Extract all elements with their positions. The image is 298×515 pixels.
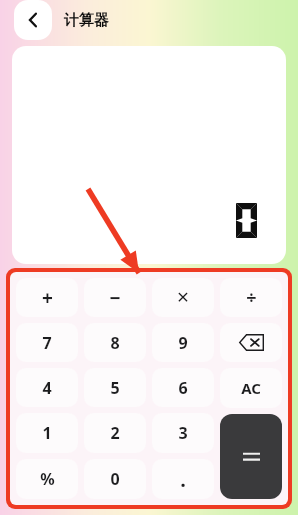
button[interactable]: 1 [16,413,78,453]
staticText: ÷ [246,285,257,310]
staticText: 2 [110,422,120,444]
staticText: 6 [178,377,188,399]
staticText: + [42,285,53,311]
staticText: 9 [178,332,188,354]
staticText: % [40,468,55,490]
button[interactable]: 4 [16,368,78,407]
button[interactable]: . [152,459,214,499]
button[interactable]: % [16,459,78,499]
button[interactable]: − [84,278,146,317]
staticText: 1 [42,422,52,444]
button[interactable]: + [16,278,78,317]
staticText: 3 [178,422,188,444]
staticText: 计算器 [64,11,109,30]
button[interactable]: 8 [84,323,146,362]
staticText: 7 [42,332,52,354]
button[interactable]: 2 [84,413,146,453]
button[interactable]: ÷ [220,278,282,317]
staticText: 0 [110,468,120,490]
button[interactable]: 9 [152,323,214,362]
staticText: 5 [110,377,120,399]
staticText: − [109,285,121,311]
button[interactable]: AC [220,368,282,408]
button[interactable]: 5 [84,368,146,407]
button[interactable]: 0 [84,459,146,499]
button[interactable]: Backspace [220,323,282,362]
button[interactable]: 6 [152,368,214,407]
staticText: 4 [42,377,52,399]
staticText: AC [241,378,261,398]
button[interactable]: ✕ [152,278,214,317]
staticText: . [180,466,186,493]
button[interactable]: Equals [220,414,282,499]
button[interactable]: 7 [16,323,78,362]
staticText: 8 [110,332,120,354]
staticText: ✕ [176,288,190,307]
button[interactable]: 3 [152,413,214,453]
button[interactable]: Back [14,0,52,40]
